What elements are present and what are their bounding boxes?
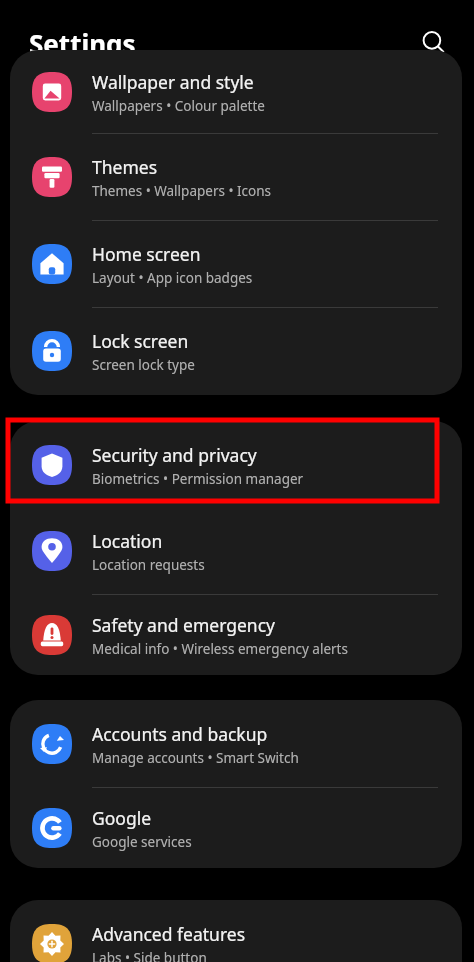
- button[interactable]: Search: [412, 21, 456, 65]
- button[interactable]: Advanced features: [10, 901, 462, 962]
- button[interactable]: Google: [10, 788, 462, 868]
- staticText: Themes • Wallpapers • Icons: [92, 182, 272, 200]
- staticText: Biometrics • Permission manager: [92, 470, 304, 488]
- staticText: Wallpapers • Colour palette: [92, 97, 265, 115]
- staticText: Google services: [92, 833, 192, 851]
- staticText: Location: [92, 529, 163, 553]
- staticText: Themes: [92, 155, 158, 179]
- button[interactable]: Security and privacy: [10, 422, 462, 508]
- staticText: Settings: [29, 26, 136, 61]
- staticText: Manage accounts • Smart Switch: [92, 749, 299, 767]
- button[interactable]: Location: [10, 508, 462, 594]
- staticText: Location requests: [92, 556, 205, 574]
- staticText: Lock screen: [92, 329, 189, 353]
- button[interactable]: Lock screen: [10, 308, 462, 394]
- staticText: Layout • App icon badges: [92, 269, 253, 287]
- staticText: Accounts and backup: [92, 722, 268, 746]
- staticText: Home screen: [92, 242, 201, 266]
- staticText: Advanced features: [92, 922, 246, 946]
- staticText: Google: [92, 806, 152, 830]
- button[interactable]: Accounts and backup: [10, 701, 462, 787]
- staticText: Wallpaper and style: [92, 70, 254, 94]
- button[interactable]: Safety and emergency: [10, 595, 462, 675]
- button[interactable]: Wallpaper and style: [10, 51, 462, 133]
- button[interactable]: Home screen: [10, 221, 462, 307]
- staticText: Screen lock type: [92, 356, 195, 374]
- button[interactable]: Themes: [10, 134, 462, 220]
- staticText: Safety and emergency: [92, 613, 275, 637]
- staticText: Labs • Side button: [92, 949, 207, 962]
- staticText: Security and privacy: [92, 443, 257, 467]
- staticText: Medical info • Wireless emergency alerts: [92, 640, 348, 658]
